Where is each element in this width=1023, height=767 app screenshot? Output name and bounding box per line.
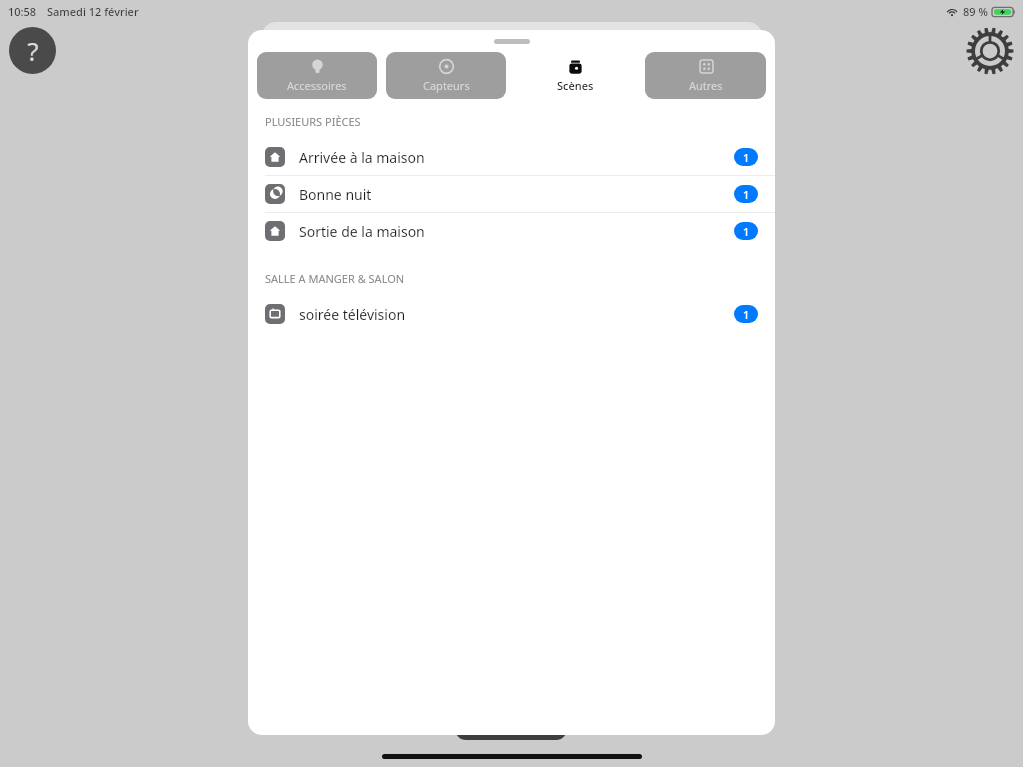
button[interactable]: Bonne nuit (248, 176, 775, 213)
staticText: ? (27, 33, 39, 68)
staticText: 1 (743, 150, 750, 165)
button[interactable]: Sortie de la maison (248, 213, 775, 250)
staticText: Capteurs (423, 78, 470, 93)
button[interactable]: Autres (645, 52, 766, 99)
staticText: 1 (743, 187, 750, 202)
staticText: PLUSIEURS PIÈCES (265, 114, 361, 129)
button[interactable]: Accessoires (257, 52, 377, 99)
staticText: SALLE A MANGER & SALON (265, 271, 405, 286)
staticText: 1 (743, 307, 750, 322)
staticText: 89 % (963, 4, 988, 19)
staticText: 10:58 (8, 4, 37, 19)
staticText: 1 (743, 224, 750, 239)
staticText: Sortie de la maison (299, 222, 425, 241)
staticText: Bonne nuit (299, 185, 372, 204)
staticText: Arrivée à la maison (299, 148, 425, 167)
button[interactable]: soirée télévision (248, 296, 775, 333)
button[interactable]: Réglages (963, 24, 1017, 78)
button[interactable]: Arrivée à la maison (248, 139, 775, 176)
staticText: soirée télévision (299, 305, 406, 324)
staticText: Autres (689, 78, 723, 93)
staticText: Scènes (557, 78, 594, 93)
button[interactable]: Aide (9, 27, 56, 74)
staticText: Samedi 12 février (47, 4, 139, 19)
staticText: Accessoires (287, 78, 347, 93)
button[interactable]: Scènes (515, 52, 636, 99)
button[interactable]: Capteurs (386, 52, 506, 99)
